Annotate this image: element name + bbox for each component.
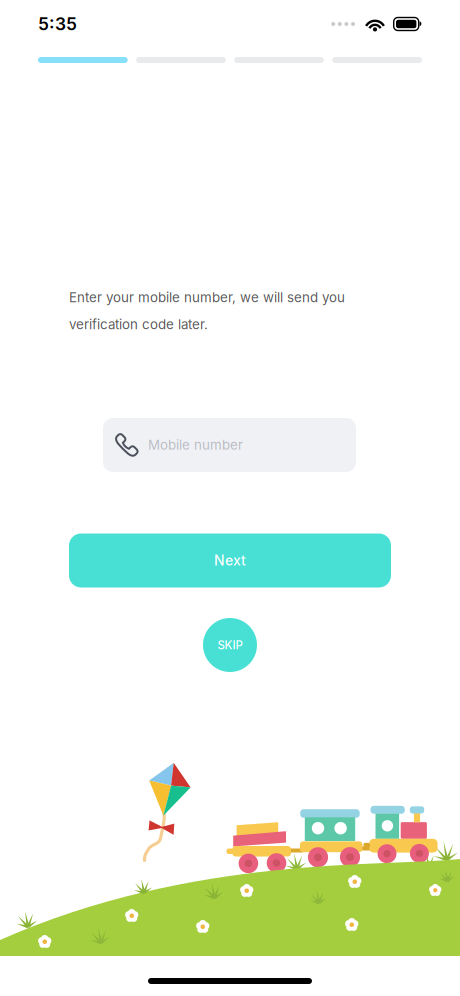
staticText: Next: [214, 552, 246, 569]
staticText: Mobile number: [148, 437, 243, 453]
staticText: Enter your mobile number, we will send y…: [69, 289, 345, 305]
button[interactable]: SKIP: [203, 618, 257, 672]
staticText: SKIP: [217, 638, 242, 652]
button[interactable]: Next: [69, 533, 391, 587]
button[interactable]: Mobile number: [103, 418, 356, 472]
staticText: verification code later.: [69, 316, 208, 332]
staticText: 5:35: [38, 13, 77, 34]
